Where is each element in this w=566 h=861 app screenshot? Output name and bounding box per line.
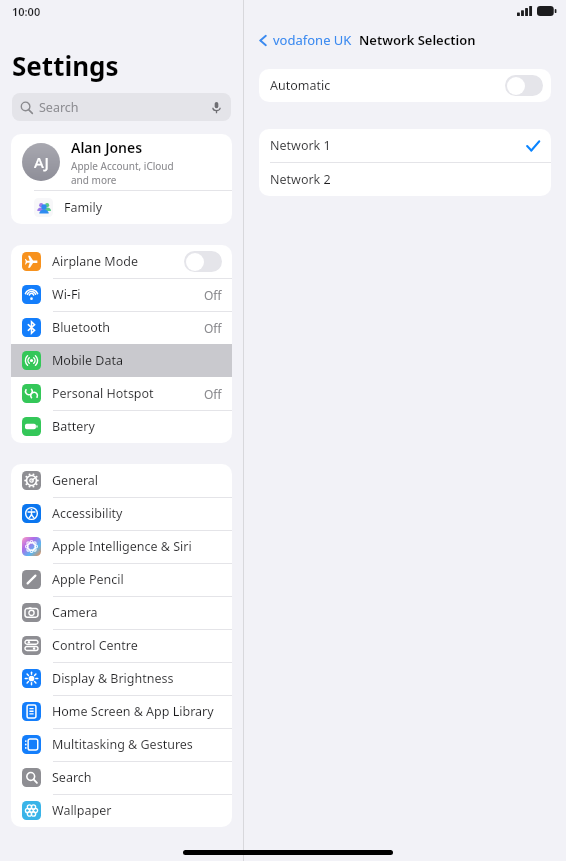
button[interactable]: Mobile Data bbox=[11, 344, 232, 377]
staticText: 10:00 bbox=[12, 4, 41, 19]
button[interactable]: Back bbox=[257, 29, 476, 51]
button[interactable]: AJ bbox=[11, 134, 232, 190]
staticText: Wi-Fi bbox=[52, 286, 81, 303]
button[interactable]: Personal Hotspot bbox=[11, 377, 232, 410]
staticText: Off bbox=[204, 320, 222, 336]
button[interactable]: Apple Intelligence & Siri bbox=[11, 530, 232, 563]
staticText: Off bbox=[204, 386, 222, 402]
staticText: Search bbox=[39, 99, 79, 116]
staticText: Multitasking & Gestures bbox=[52, 736, 193, 753]
button[interactable]: Family bbox=[11, 191, 232, 224]
staticText: Apple Intelligence & Siri bbox=[52, 538, 192, 555]
staticText: Display & Brightness bbox=[52, 670, 174, 687]
staticText: Bluetooth bbox=[52, 319, 111, 336]
staticText: Search bbox=[52, 769, 92, 786]
staticText: vodafone UK bbox=[273, 31, 352, 49]
staticText: Home Screen & App Library bbox=[52, 703, 214, 720]
staticText: Automatic bbox=[270, 77, 331, 94]
button[interactable]: General bbox=[11, 464, 232, 497]
staticText: Battery bbox=[52, 418, 95, 435]
staticText: Camera bbox=[52, 604, 98, 621]
staticText: Network 2 bbox=[270, 171, 331, 188]
button[interactable]: Multitasking & Gestures bbox=[11, 728, 232, 761]
button[interactable]: Toggle bbox=[184, 251, 222, 272]
button[interactable]: Search bbox=[12, 93, 231, 121]
button[interactable]: Control Centre bbox=[11, 629, 232, 662]
staticText: AJ bbox=[34, 152, 49, 172]
staticText: Wallpaper bbox=[52, 802, 112, 819]
staticText: General bbox=[52, 472, 99, 489]
button[interactable]: Bluetooth bbox=[11, 311, 232, 344]
button[interactable]: Search bbox=[11, 761, 232, 794]
staticText: Off bbox=[204, 287, 222, 303]
button[interactable]: Network 1 bbox=[259, 129, 551, 162]
button[interactable]: Accessibility bbox=[11, 497, 232, 530]
button[interactable]: Network 2 bbox=[259, 163, 551, 196]
staticText: Personal Hotspot bbox=[52, 385, 154, 402]
button[interactable]: Toggle bbox=[505, 75, 543, 96]
staticText: Apple Pencil bbox=[52, 571, 124, 588]
staticText: Network 1 bbox=[270, 137, 331, 154]
staticText: Control Centre bbox=[52, 637, 138, 654]
staticText: and more bbox=[71, 173, 117, 187]
staticText: Network Selection bbox=[359, 31, 476, 49]
button[interactable]: Battery bbox=[11, 410, 232, 443]
other: Back bbox=[257, 34, 270, 47]
button[interactable]: Home Screen & App Library bbox=[11, 695, 232, 728]
button[interactable]: Display & Brightness bbox=[11, 662, 232, 695]
button[interactable]: Apple Pencil bbox=[11, 563, 232, 596]
button[interactable]: Wallpaper bbox=[11, 794, 232, 827]
button[interactable]: Camera bbox=[11, 596, 232, 629]
button[interactable]: Airplane Mode bbox=[11, 245, 232, 278]
button[interactable]: Wi-Fi bbox=[11, 278, 232, 311]
staticText: Airplane Mode bbox=[52, 253, 138, 270]
staticText: Accessibility bbox=[52, 505, 123, 522]
button[interactable]: Automatic bbox=[259, 69, 551, 102]
staticText: Apple Account, iCloud bbox=[71, 159, 174, 173]
staticText: Mobile Data bbox=[52, 352, 124, 369]
staticText: Family bbox=[64, 199, 103, 216]
staticText: Settings bbox=[12, 48, 119, 83]
staticText: Alan Jones bbox=[71, 138, 143, 157]
